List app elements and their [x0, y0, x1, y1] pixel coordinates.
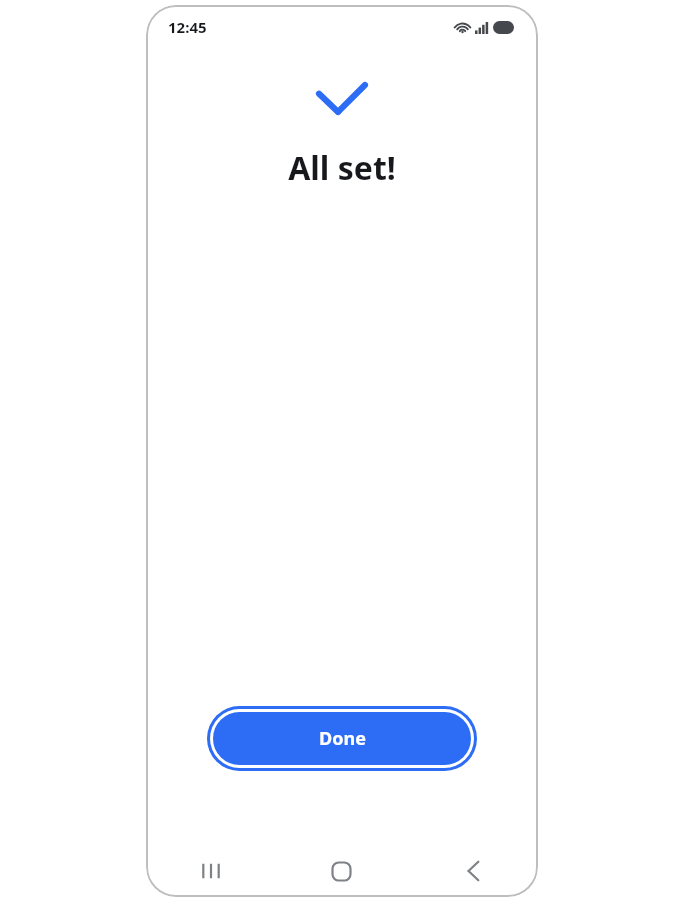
button[interactable]: Done	[213, 712, 471, 765]
staticText: Done	[319, 726, 366, 751]
staticText: 12:45	[168, 17, 207, 37]
button[interactable]: Back	[407, 845, 538, 897]
staticText: All set!	[288, 146, 396, 190]
button[interactable]: Home	[276, 845, 407, 897]
button[interactable]: Recents	[146, 845, 276, 897]
